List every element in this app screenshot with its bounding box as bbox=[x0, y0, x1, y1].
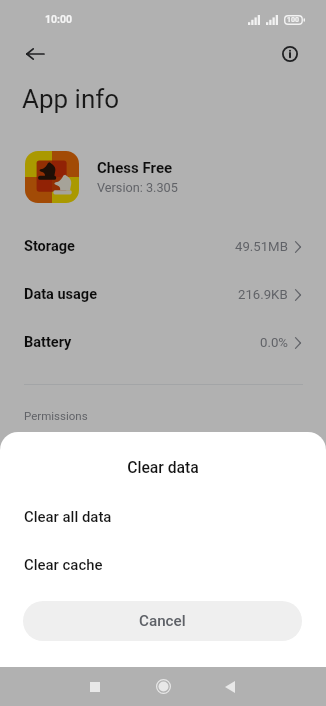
button[interactable]: Clear cache bbox=[0, 540, 326, 588]
button[interactable]: Back bbox=[215, 667, 245, 706]
staticText: Clear data bbox=[0, 458, 326, 476]
button[interactable]: Back bbox=[19, 38, 51, 70]
staticText: Chess Free bbox=[97, 159, 173, 177]
button[interactable]: Home bbox=[148, 667, 178, 706]
staticText: 0.0% bbox=[260, 335, 288, 350]
button[interactable]: Recent apps bbox=[80, 667, 110, 706]
staticText: App info bbox=[22, 84, 120, 114]
button[interactable]: Cancel bbox=[23, 601, 302, 641]
button[interactable]: Storage bbox=[0, 222, 326, 270]
staticText: Clear all data bbox=[24, 508, 112, 525]
button[interactable]: App details bbox=[277, 41, 303, 67]
button[interactable]: Clear all data bbox=[0, 492, 326, 540]
staticText: Data usage bbox=[24, 286, 97, 303]
staticText: 10:00 bbox=[45, 13, 73, 25]
staticText: 100 bbox=[287, 16, 300, 24]
button[interactable]: Battery bbox=[0, 318, 326, 366]
staticText: Battery bbox=[24, 334, 72, 351]
staticText: Cancel bbox=[139, 612, 186, 630]
button[interactable]: Data usage bbox=[0, 270, 326, 318]
staticText: Clear cache bbox=[24, 556, 103, 573]
staticText: Permissions bbox=[24, 409, 88, 422]
staticText: Storage bbox=[24, 238, 75, 255]
staticText: Version: 3.305 bbox=[97, 180, 178, 195]
staticText: 49.51MB bbox=[235, 239, 288, 254]
staticText: 216.9KB bbox=[238, 287, 288, 302]
